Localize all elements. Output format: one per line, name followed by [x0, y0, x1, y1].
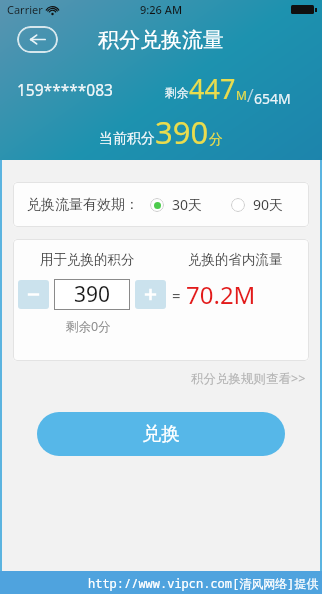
staticText: 兑换 [142, 422, 180, 446]
staticText: M [236, 87, 247, 103]
button[interactable]: 积分兑换规则查看>> [188, 367, 309, 390]
staticText: Carrier [7, 2, 43, 17]
staticText: 70.2M [186, 278, 256, 311]
button[interactable]: Increase points [135, 280, 166, 309]
staticText: 90天 [253, 195, 284, 214]
staticText: 30天 [172, 195, 203, 214]
staticText: 剩余 [165, 85, 189, 100]
staticText: 用于兑换的积分 [40, 251, 135, 268]
staticText: 兑换的省内流量 [188, 251, 283, 268]
staticText: 9:26 AM [140, 2, 183, 17]
staticText: 积分兑换规则查看>> [191, 370, 306, 387]
button[interactable]: Back [17, 26, 58, 53]
staticText: 当前积分 [99, 130, 155, 148]
staticText: 447 [189, 70, 236, 107]
staticText: 分 [209, 131, 223, 149]
staticText: 兑换流量有效期： [27, 196, 139, 214]
staticText: 390 [155, 111, 209, 153]
staticText: 654M [254, 89, 291, 108]
button[interactable]: 90天 [228, 191, 287, 218]
button[interactable]: 30天 [147, 191, 206, 218]
button[interactable]: Decrease points [18, 280, 49, 309]
button[interactable]: 兑换 [37, 412, 285, 456]
staticText: = [172, 285, 181, 305]
staticText: 积分兑换流量 [98, 27, 224, 53]
staticText: 390 [74, 280, 111, 309]
staticText: http://www.vipcn.com[清风网络]提供 [88, 575, 319, 591]
staticText: 159*****083 [17, 79, 113, 100]
staticText: 剩余0分 [66, 318, 111, 335]
staticText: / [247, 82, 254, 108]
